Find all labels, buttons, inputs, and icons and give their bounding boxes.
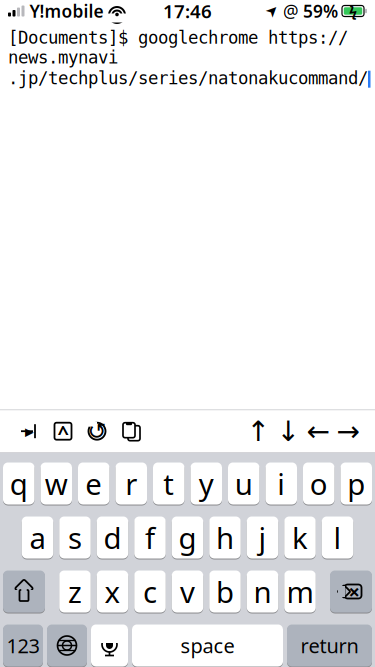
button[interactable]: Tab (12, 414, 46, 448)
button[interactable]: k (284, 515, 316, 559)
staticText: r (125, 464, 137, 503)
button[interactable]: History (80, 414, 114, 448)
button[interactable]: a (22, 515, 53, 559)
button[interactable]: Dictate (91, 623, 128, 667)
staticText: a (29, 518, 45, 557)
staticText: 123 (6, 632, 39, 659)
button[interactable]: Up (243, 414, 273, 448)
button[interactable]: s (59, 515, 91, 559)
button[interactable]: q (3, 461, 34, 505)
staticText: → (336, 415, 359, 447)
button[interactable]: Paste (114, 414, 148, 448)
button[interactable]: d (97, 515, 128, 559)
button[interactable]: Down (273, 414, 303, 448)
button[interactable]: t (153, 461, 184, 505)
staticText: ← (306, 415, 329, 447)
staticText: .jp/techplus/series/natonakucommand/ (8, 68, 368, 88)
button[interactable]: f (134, 515, 166, 559)
staticText: m (286, 572, 313, 611)
button[interactable]: w (40, 461, 72, 505)
staticText: l (333, 518, 341, 557)
button[interactable]: o (303, 461, 334, 505)
button[interactable]: h (209, 515, 241, 559)
staticText: ↓ (276, 415, 299, 447)
staticText: ▸ (25, 421, 34, 441)
button[interactable]: l (322, 515, 353, 559)
button[interactable]: e (78, 461, 109, 505)
staticText: x (104, 572, 120, 611)
staticText: ϟ (349, 1, 357, 21)
button[interactable]: 123 (3, 623, 43, 667)
staticText: p (347, 464, 365, 503)
staticText: b (216, 572, 234, 611)
staticText: d (103, 518, 121, 557)
staticText: return (300, 632, 358, 659)
button[interactable]: z (59, 569, 91, 613)
staticText: n (253, 572, 271, 611)
staticText: 17:46 (163, 0, 212, 23)
staticText: ^ (57, 419, 68, 445)
button[interactable]: x (97, 569, 128, 613)
button[interactable]: v (172, 569, 203, 613)
staticText: ↺ (87, 418, 106, 444)
staticText: y (199, 464, 214, 503)
staticText: v (180, 572, 195, 611)
button[interactable]: r (115, 461, 147, 505)
staticText: j (258, 518, 266, 557)
staticText: s (68, 518, 82, 557)
staticText: u (235, 464, 253, 503)
staticText: [Documents]$ googlechrome https://news.m… (8, 28, 348, 67)
staticText: Y!mobile (29, 0, 103, 22)
button[interactable]: g (172, 515, 203, 559)
button[interactable]: b (209, 569, 241, 613)
staticText: h (216, 518, 234, 557)
staticText: f (145, 518, 155, 557)
staticText: space (180, 632, 234, 659)
staticText: w (45, 464, 68, 503)
staticText: × (348, 578, 359, 605)
staticText: @ (283, 0, 299, 22)
button[interactable]: Shift (3, 569, 45, 613)
button[interactable]: y (190, 461, 222, 505)
button[interactable]: p (340, 461, 372, 505)
button[interactable]: n (247, 569, 278, 613)
button[interactable]: Left (303, 414, 333, 448)
button[interactable]: j (247, 515, 278, 559)
staticText: z (68, 572, 82, 611)
staticText: e (85, 464, 102, 503)
button[interactable]: Control (46, 414, 80, 448)
staticText: ↑ (246, 415, 269, 447)
button[interactable]: Right (333, 414, 363, 448)
button[interactable]: i (265, 461, 297, 505)
button[interactable]: Next keyboard (47, 623, 87, 667)
staticText: k (292, 518, 308, 557)
staticText: 59% (303, 0, 338, 22)
button[interactable]: u (228, 461, 259, 505)
button[interactable]: space (132, 623, 283, 667)
staticText: o (310, 464, 328, 503)
staticText: c (143, 572, 157, 611)
staticText: g (178, 518, 196, 557)
button[interactable]: return (287, 623, 372, 667)
button[interactable]: m (284, 569, 316, 613)
button[interactable]: Delete (330, 569, 372, 613)
staticText: t (163, 464, 174, 503)
staticText: q (10, 464, 28, 503)
button[interactable]: c (134, 569, 166, 613)
staticText: ➤ (266, 3, 278, 19)
staticText: i (277, 464, 285, 503)
